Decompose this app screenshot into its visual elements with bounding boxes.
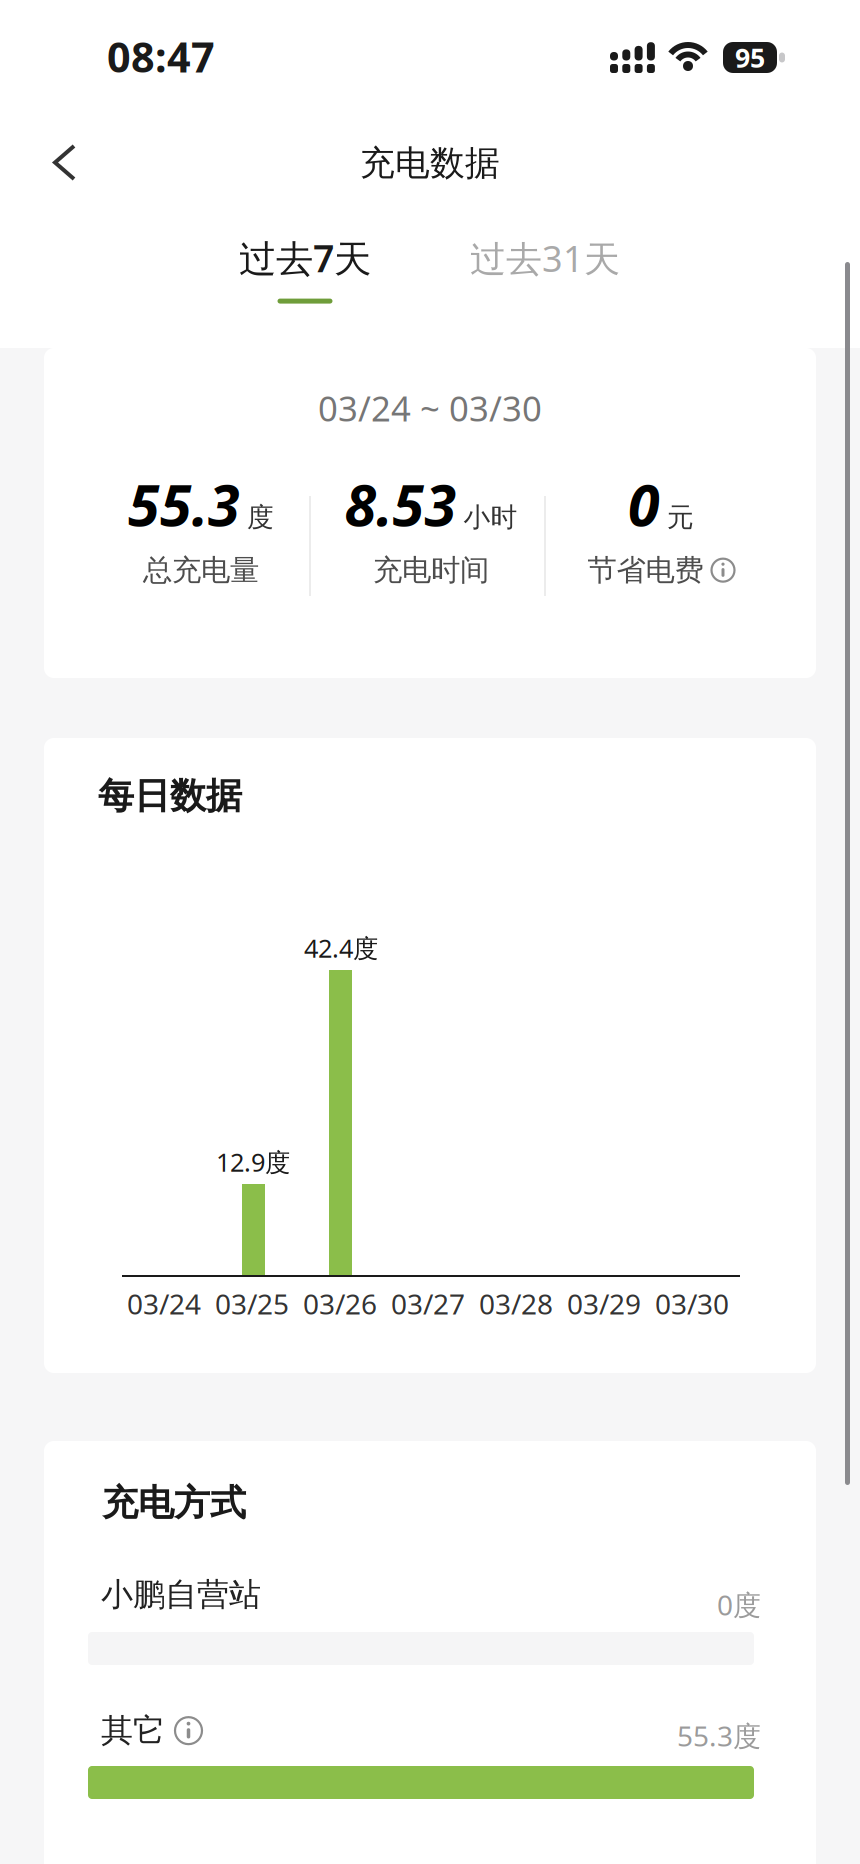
staticText: 03/24 ~ 03/30 bbox=[318, 385, 542, 431]
staticText: 03/27 bbox=[391, 1285, 465, 1322]
button[interactable]: 其它充电说明 bbox=[175, 1717, 202, 1744]
button[interactable]: 返回 bbox=[30, 135, 100, 205]
staticText: 03/30 bbox=[655, 1285, 729, 1322]
staticText: 0度 bbox=[717, 1586, 761, 1623]
staticText: 95 bbox=[735, 40, 765, 75]
staticText: 充电数据 bbox=[360, 142, 500, 185]
staticText: 充电方式 bbox=[102, 1481, 246, 1525]
staticText: 其它 bbox=[101, 1711, 165, 1750]
staticText: 03/24 bbox=[127, 1285, 201, 1322]
staticText: 过去7天 bbox=[239, 233, 371, 283]
staticText: 42.4度 bbox=[304, 931, 378, 965]
staticText: 每日数据 bbox=[98, 774, 242, 818]
staticText: 0 bbox=[628, 466, 660, 542]
staticText: 55.3 bbox=[128, 466, 240, 542]
button[interactable]: 过去31天 bbox=[445, 236, 645, 280]
staticText: 12.9度 bbox=[216, 1145, 290, 1179]
staticText: 总充电量 bbox=[143, 552, 259, 588]
staticText: 03/26 bbox=[303, 1285, 377, 1322]
staticText: 小时 bbox=[463, 501, 517, 534]
staticText: 充电时间 bbox=[373, 552, 489, 588]
staticText: 03/29 bbox=[567, 1285, 641, 1322]
staticText: 元 bbox=[667, 501, 694, 534]
staticText: 过去31天 bbox=[470, 234, 620, 282]
staticText: 08:47 bbox=[107, 29, 215, 84]
button[interactable]: 过去7天 bbox=[210, 233, 400, 304]
staticText: 度 bbox=[247, 501, 274, 534]
staticText: 03/28 bbox=[479, 1285, 553, 1322]
staticText: 节省电费 bbox=[587, 552, 703, 588]
staticText: 55.3度 bbox=[677, 1717, 761, 1754]
button[interactable]: 节省电费说明 bbox=[711, 559, 734, 582]
staticText: 8.53 bbox=[344, 466, 456, 542]
staticText: 03/25 bbox=[215, 1285, 289, 1322]
staticText: 小鹏自营站 bbox=[101, 1575, 261, 1614]
